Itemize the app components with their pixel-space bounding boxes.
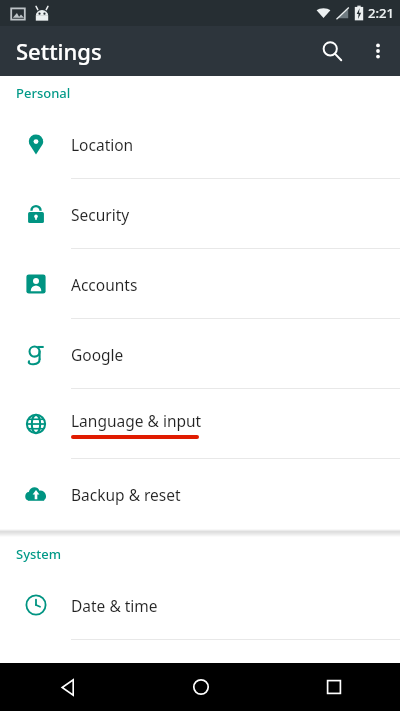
staticText: Accounts bbox=[71, 274, 138, 295]
staticText: Language & input bbox=[71, 410, 202, 431]
staticText: Location bbox=[71, 134, 134, 155]
button[interactable]: Language & input bbox=[0, 389, 400, 459]
button[interactable]: Backup & reset bbox=[0, 459, 400, 529]
button[interactable]: Accounts bbox=[0, 249, 400, 319]
staticText: Backup & reset bbox=[71, 484, 181, 505]
staticText: Personal bbox=[16, 84, 71, 102]
button[interactable]: Search bbox=[308, 27, 356, 75]
button[interactable]: Recent apps bbox=[267, 663, 400, 711]
button[interactable]: Date & time bbox=[0, 570, 400, 640]
button[interactable]: Location bbox=[0, 109, 400, 179]
button[interactable]: Security bbox=[0, 179, 400, 249]
button[interactable]: Home bbox=[134, 663, 267, 711]
button[interactable]: More options bbox=[356, 29, 400, 73]
staticText: Date & time bbox=[71, 595, 158, 616]
staticText: System bbox=[16, 545, 62, 563]
staticText: 2:21 bbox=[368, 4, 394, 22]
button[interactable]: Google bbox=[0, 319, 400, 389]
button[interactable]: Back bbox=[0, 663, 134, 711]
staticText: Settings bbox=[16, 36, 102, 66]
staticText: Security bbox=[71, 204, 130, 225]
staticText: Google bbox=[71, 344, 124, 365]
